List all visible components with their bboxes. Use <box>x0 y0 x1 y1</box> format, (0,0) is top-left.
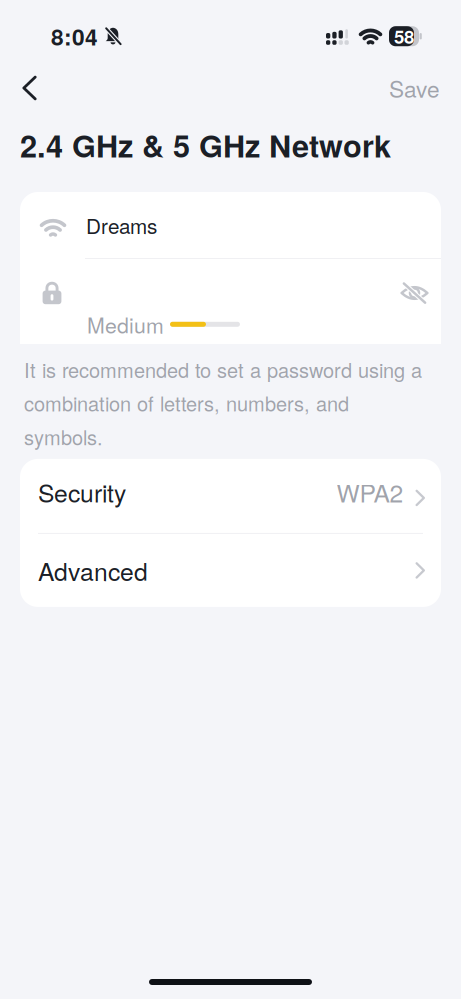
button[interactable]: Security <box>20 459 441 533</box>
staticText: Save <box>389 72 440 104</box>
staticText: 58 <box>394 23 414 50</box>
staticText: 8:04 <box>51 20 98 52</box>
button[interactable]: Save <box>375 63 461 113</box>
staticText: WPA2 <box>336 474 403 510</box>
staticText: Dreams <box>86 210 157 240</box>
button[interactable]: Show password <box>390 272 439 314</box>
staticText: Medium <box>87 309 164 339</box>
staticText: Security <box>38 474 126 510</box>
button[interactable]: Advanced <box>20 534 441 607</box>
staticText: It is recommended to set a password usin… <box>24 355 422 451</box>
staticText: 2.4 GHz & 5 GHz Network <box>20 123 391 167</box>
button[interactable]: Back <box>0 66 51 109</box>
staticText: Advanced <box>38 553 148 588</box>
